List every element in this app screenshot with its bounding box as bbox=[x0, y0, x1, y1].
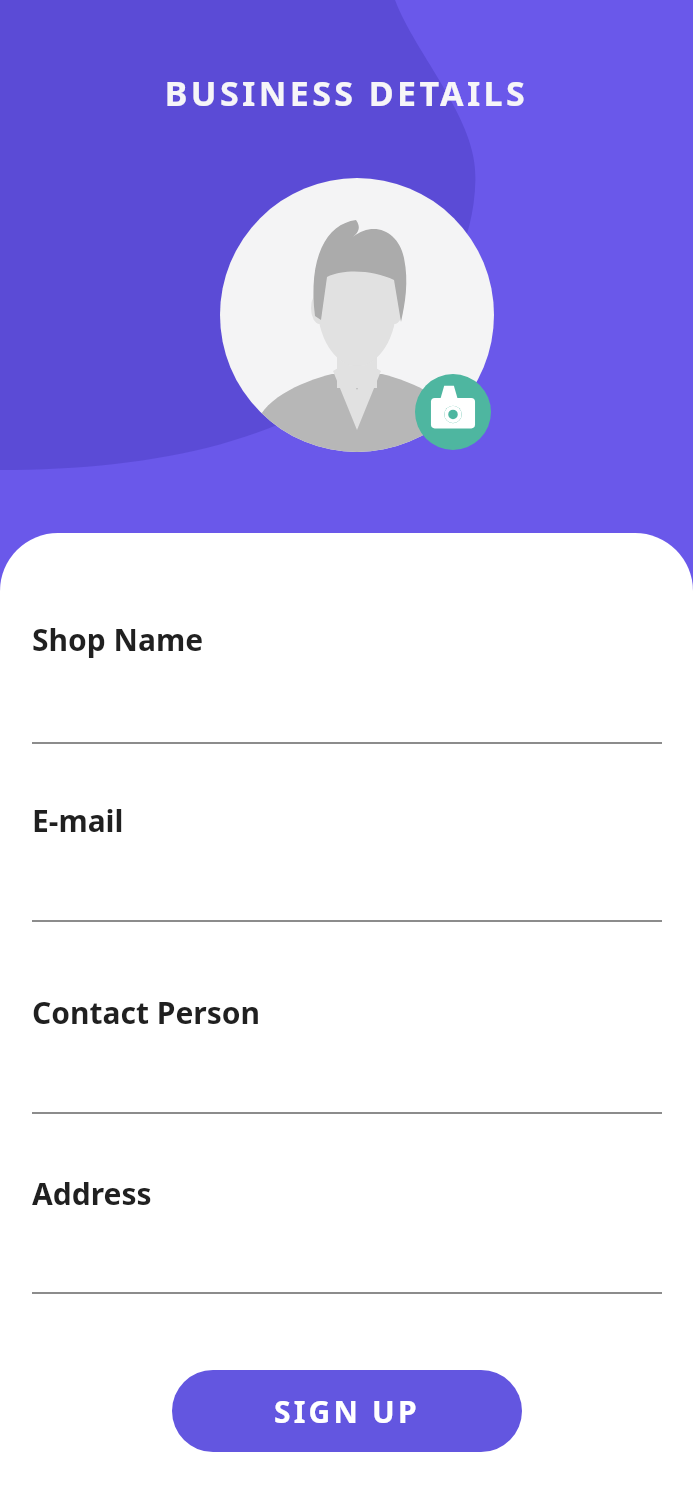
staticText: E-mail bbox=[32, 800, 124, 841]
staticText: BUSINESS DETAILS bbox=[0, 70, 693, 116]
button[interactable]: Profile photo bbox=[220, 178, 494, 452]
button[interactable]: SIGN UP bbox=[172, 1370, 522, 1452]
staticText: Shop Name bbox=[32, 619, 204, 660]
button[interactable]: Contact Person bbox=[0, 984, 693, 1116]
staticText: Contact Person bbox=[32, 992, 261, 1033]
button[interactable]: Shop Name bbox=[0, 611, 693, 746]
staticText: SIGN UP bbox=[274, 1391, 420, 1432]
button[interactable]: Address bbox=[0, 1165, 693, 1296]
staticText: Address bbox=[32, 1173, 152, 1214]
button[interactable]: E-mail bbox=[0, 792, 693, 924]
button[interactable]: Change photo bbox=[415, 374, 491, 450]
